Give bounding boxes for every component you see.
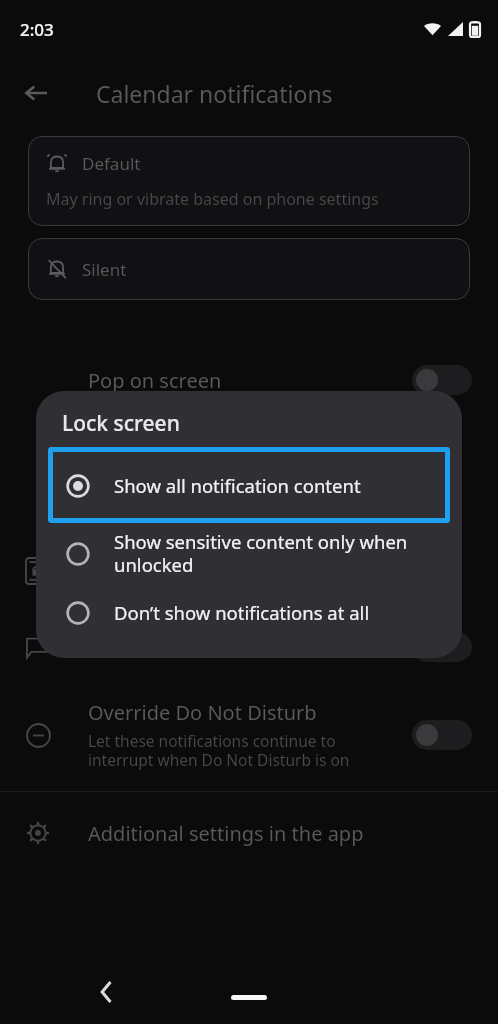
button[interactable]: Show all notification content bbox=[48, 447, 450, 523]
button[interactable]: Show sensitive content only when unlocke… bbox=[36, 523, 462, 584]
staticText: Pop on screen bbox=[88, 367, 222, 394]
button[interactable]: Show notification dot bbox=[0, 609, 498, 685]
staticText: Additional settings in the app bbox=[88, 820, 364, 847]
button[interactable]: Pop on screen bbox=[0, 348, 498, 412]
button[interactable]: Additional settings in the app bbox=[0, 806, 498, 860]
button[interactable]: Don’t show notifications at all bbox=[36, 584, 462, 640]
staticText: 2:03 bbox=[20, 18, 54, 41]
staticText: Lock screen bbox=[62, 409, 180, 438]
button[interactable]: Override Do Not Disturb bbox=[0, 685, 498, 785]
staticText: Show sensitive content only when unlocke… bbox=[114, 529, 408, 578]
button[interactable]: Toggle bbox=[412, 365, 472, 395]
staticText: Show all notification content bbox=[114, 473, 361, 498]
button[interactable]: Back bbox=[12, 69, 60, 117]
staticText: Lock screen bbox=[88, 544, 199, 571]
button[interactable]: Toggle bbox=[412, 632, 472, 662]
button[interactable]: Lock screen bbox=[0, 532, 498, 609]
staticText: Show notification dot bbox=[88, 634, 288, 661]
staticText: Override Do Not Disturb bbox=[88, 699, 317, 726]
staticText: Calendar notifications bbox=[96, 78, 333, 109]
button[interactable]: Default bbox=[28, 136, 470, 226]
button[interactable]: Toggle bbox=[412, 720, 472, 750]
staticText: Silent bbox=[82, 258, 127, 281]
staticText: Don’t show notifications at all bbox=[114, 600, 370, 625]
button[interactable]: Silent bbox=[28, 238, 470, 300]
staticText: Let these notifications continue to inte… bbox=[88, 730, 350, 771]
staticText: May ring or vibrate based on phone setti… bbox=[46, 188, 379, 210]
staticText: Default bbox=[82, 152, 141, 175]
